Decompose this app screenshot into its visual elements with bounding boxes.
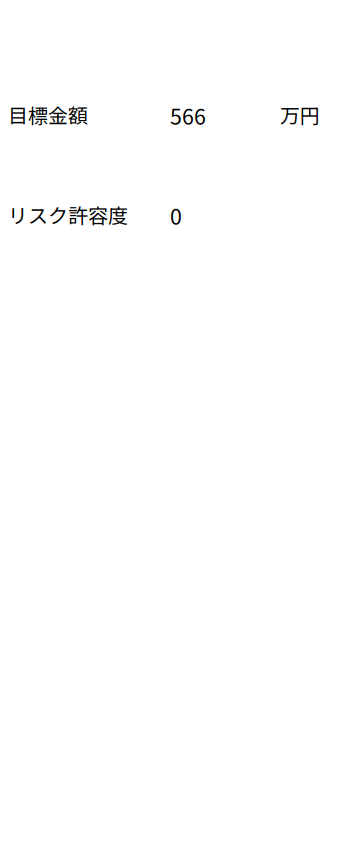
staticText: リスク許容度 — [8, 200, 128, 229]
staticText: 目標金額 — [8, 100, 88, 129]
staticText: 0 — [170, 200, 182, 231]
staticText: 566 — [170, 100, 206, 131]
staticText: 万円 — [280, 100, 320, 129]
